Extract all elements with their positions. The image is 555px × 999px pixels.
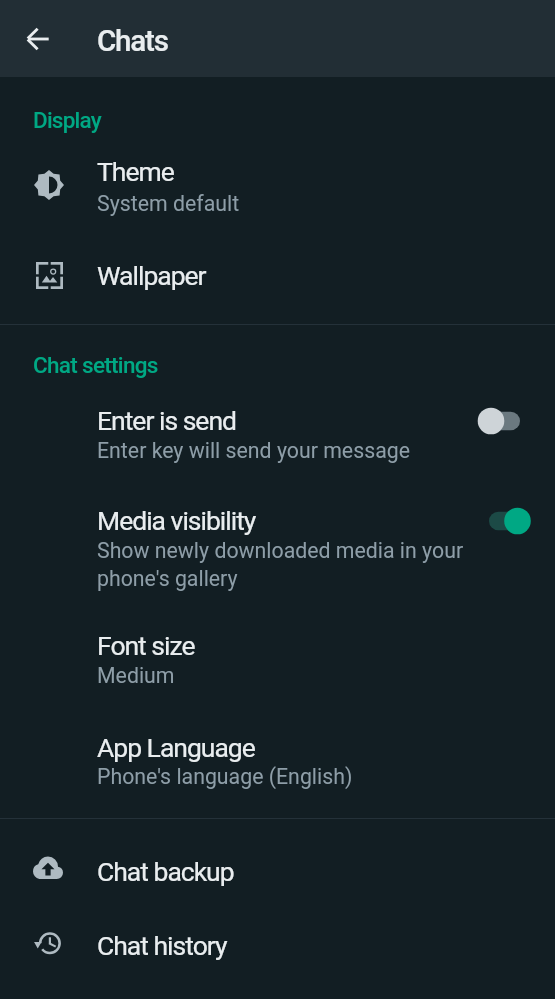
staticText: Font size	[97, 630, 195, 661]
staticText: Phone's language (English)	[97, 764, 353, 789]
staticText: System default	[97, 191, 240, 216]
button[interactable]: Back	[6, 8, 70, 69]
staticText: Theme	[97, 156, 174, 187]
staticText: App Language	[97, 732, 255, 763]
button[interactable]	[0, 396, 555, 472]
button[interactable]	[0, 724, 555, 800]
staticText: Chat backup	[97, 856, 234, 887]
staticText: Chat history	[97, 930, 227, 961]
staticText: Medium	[97, 663, 175, 688]
button[interactable]	[0, 840, 555, 904]
staticText: Wallpaper	[97, 260, 206, 291]
button[interactable]	[0, 148, 555, 222]
staticText: Enter is send	[97, 405, 236, 436]
staticText: Chat settings	[33, 352, 158, 378]
button[interactable]	[0, 496, 555, 600]
staticText: Display	[33, 107, 101, 133]
button[interactable]	[0, 915, 555, 979]
button[interactable]	[0, 243, 555, 307]
staticText: Media visibility	[97, 505, 256, 536]
button[interactable]: Media visibility on	[470, 503, 532, 539]
button[interactable]: Enter is send off	[470, 403, 532, 439]
staticText: Enter key will send your message	[97, 438, 410, 463]
button[interactable]	[0, 622, 555, 698]
staticText: Chats	[97, 24, 168, 59]
staticText: Show newly downloaded media in your phon…	[97, 538, 469, 592]
